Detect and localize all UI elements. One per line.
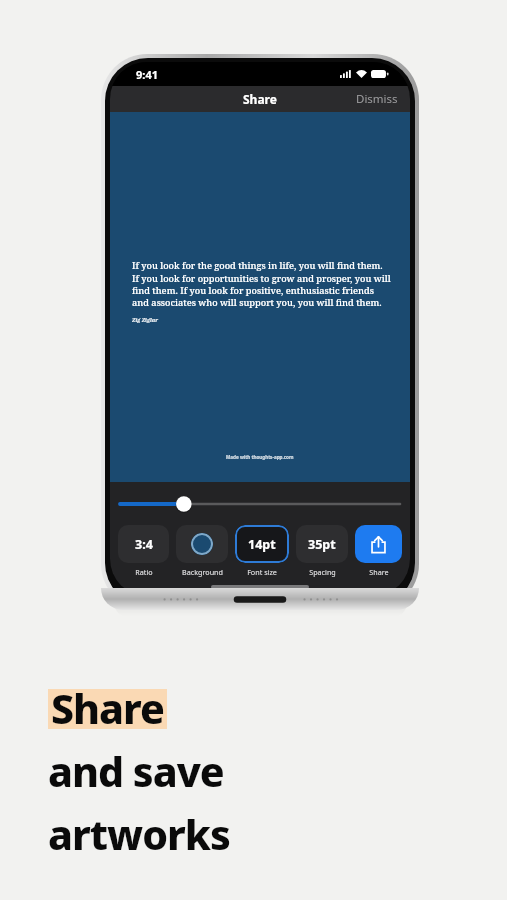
staticText: Background — [182, 567, 223, 577]
button[interactable]: Background — [176, 525, 228, 577]
staticText: artworks — [48, 806, 230, 862]
button[interactable]: 14pt — [235, 525, 289, 577]
button[interactable]: 3:4 — [118, 525, 169, 577]
staticText: 3:4 — [135, 536, 153, 553]
staticText: Spacing — [309, 567, 336, 577]
staticText: 35pt — [308, 536, 336, 553]
staticText: Share — [51, 680, 164, 736]
staticText: Dismiss — [356, 91, 398, 107]
button[interactable]: Share — [355, 525, 402, 577]
button[interactable]: 35pt — [296, 525, 348, 577]
staticText: Zig Ziglar — [132, 316, 159, 323]
staticText: 14pt — [248, 536, 276, 553]
button[interactable]: Adjust value — [120, 496, 400, 512]
staticText: Share — [369, 567, 389, 577]
staticText: 9:41 — [136, 67, 158, 82]
staticText: Ratio — [135, 567, 153, 577]
button[interactable]: Dismiss — [344, 87, 410, 111]
staticText: Made with thoughts-app.com — [226, 454, 294, 460]
staticText: Share — [243, 91, 277, 107]
staticText: If you look for the good things in life,… — [132, 259, 392, 309]
staticText: and save — [48, 743, 224, 799]
staticText: Font size — [247, 567, 277, 577]
